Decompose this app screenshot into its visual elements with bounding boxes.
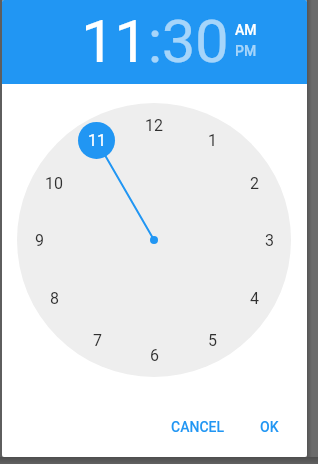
- button[interactable]: 8: [38, 282, 70, 314]
- button[interactable]: OK: [234, 403, 305, 451]
- staticText: 11: [88, 131, 106, 150]
- button[interactable]: 7: [81, 324, 113, 356]
- staticText: 4: [250, 289, 259, 308]
- button[interactable]: 9: [23, 224, 55, 256]
- staticText: AM: [235, 22, 257, 38]
- staticText: 11:30: [81, 6, 229, 76]
- staticText: 3: [265, 231, 274, 250]
- button[interactable]: PM: [230, 40, 262, 62]
- staticText: 6: [150, 346, 159, 365]
- button[interactable]: 3: [253, 224, 285, 256]
- button[interactable]: 2: [238, 167, 270, 199]
- staticText: 8: [50, 289, 59, 308]
- staticText: PM: [235, 43, 257, 59]
- button[interactable]: AM: [230, 19, 262, 41]
- button[interactable]: 11: [81, 124, 113, 156]
- staticText: 12: [145, 116, 163, 135]
- staticText: 5: [208, 331, 217, 350]
- button[interactable]: 4: [238, 282, 270, 314]
- staticText: 7: [93, 331, 102, 350]
- button[interactable]: CANCEL: [162, 403, 234, 451]
- staticText: OK: [260, 419, 279, 435]
- staticText: 10: [45, 174, 63, 193]
- button[interactable]: 12: [138, 109, 170, 141]
- button[interactable]: 1: [196, 124, 228, 156]
- button[interactable]: 10: [38, 167, 70, 199]
- staticText: CANCEL: [171, 419, 225, 435]
- staticText: 1: [208, 131, 217, 150]
- button[interactable]: 6: [138, 339, 170, 371]
- staticText: 9: [35, 231, 44, 250]
- staticText: 2: [250, 174, 259, 193]
- button[interactable]: 5: [196, 324, 228, 356]
